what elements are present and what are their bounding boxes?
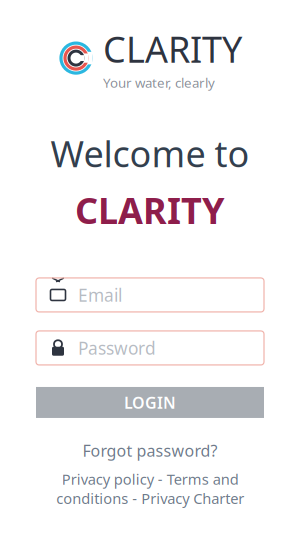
staticText: Privacy policy - Terms and conditions - … — [56, 469, 244, 508]
button[interactable]: LOGIN — [36, 387, 264, 418]
staticText: Email — [78, 283, 122, 306]
button[interactable]: Privacy policy - Terms and conditions - … — [28, 469, 272, 508]
button[interactable]: Forgot password? — [82, 440, 217, 461]
button[interactable]: Password — [36, 331, 264, 365]
staticText: Your water, clearly — [103, 74, 215, 91]
staticText: LOGIN — [124, 392, 176, 413]
staticText: CLARITY — [75, 186, 225, 234]
staticText: Welcome to — [50, 129, 249, 177]
button[interactable]: ✉ — [36, 278, 264, 312]
staticText: Forgot password? — [82, 440, 217, 461]
staticText: Password — [78, 336, 156, 359]
staticText: CLARITY — [103, 25, 242, 73]
